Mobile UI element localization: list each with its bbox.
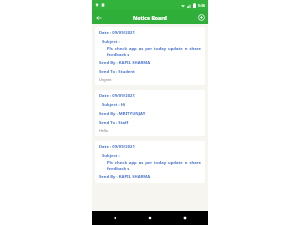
button[interactable]: Recents — [173, 211, 197, 225]
staticText: Send By : MRITYUNJAY — [99, 111, 146, 117]
staticText: 5:36 — [198, 3, 205, 8]
staticText: Subject : Hi — [102, 102, 126, 108]
button[interactable]: Back — [92, 11, 105, 24]
staticText: Notice Board — [133, 14, 167, 21]
staticText: Date : 09/09/2021 — [99, 93, 135, 99]
button[interactable]: Add notice — [195, 11, 208, 24]
staticText: Pls check app as per today update n shar… — [107, 160, 201, 171]
staticText: Send To : Staff — [99, 120, 129, 126]
button[interactable]: Date : 09/09/2021 — [95, 90, 205, 136]
staticText: Send By : KAPIL SHARMA — [99, 60, 151, 66]
button[interactable]: Home — [138, 211, 162, 225]
staticText: Date : 09/09/2021 — [99, 30, 135, 36]
button[interactable]: Date : 09/09/2021 — [95, 27, 205, 85]
button[interactable]: Date : 09/09/2021 — [95, 141, 205, 183]
staticText: Send By : KAPIL SHARMA — [99, 174, 151, 180]
button[interactable]: Back — [103, 211, 127, 225]
staticText: Send To : Student — [99, 69, 135, 75]
staticText: Pls check app as per today update n shar… — [107, 46, 201, 57]
staticText: Subject : — [102, 153, 120, 159]
staticText: Date : 09/09/2021 — [99, 144, 135, 150]
staticText: Subject : — [102, 39, 120, 45]
staticText: Hello — [99, 128, 109, 133]
staticText: Urgent — [99, 77, 112, 82]
